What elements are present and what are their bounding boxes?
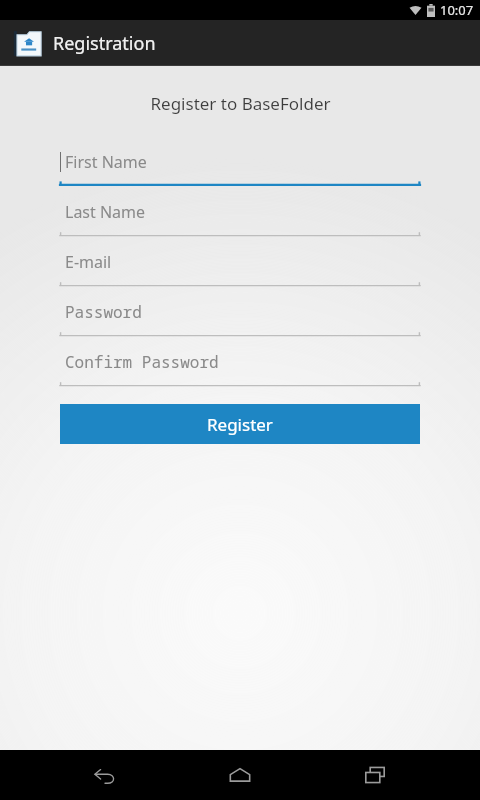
button[interactable]: Register <box>60 404 420 444</box>
button[interactable]: E-mail <box>60 237 420 287</box>
staticText: Registration <box>53 31 156 56</box>
button[interactable]: Recent apps <box>345 750 405 800</box>
staticText: Last Name <box>65 201 146 223</box>
staticText: E-mail <box>65 251 112 273</box>
staticText: Register <box>207 413 273 436</box>
staticText: 10:07 <box>440 1 474 19</box>
button[interactable]: First Name <box>60 137 420 187</box>
button[interactable]: Password <box>60 287 420 337</box>
staticText: Password <box>65 301 142 323</box>
button[interactable]: Back <box>75 750 135 800</box>
button[interactable]: Confirm Password <box>60 337 420 387</box>
button[interactable]: Home <box>210 750 270 800</box>
button[interactable]: Last Name <box>60 187 420 237</box>
staticText: Confirm Password <box>65 351 219 373</box>
staticText: First Name <box>65 151 147 173</box>
staticText: Register to BaseFolder <box>150 92 331 115</box>
